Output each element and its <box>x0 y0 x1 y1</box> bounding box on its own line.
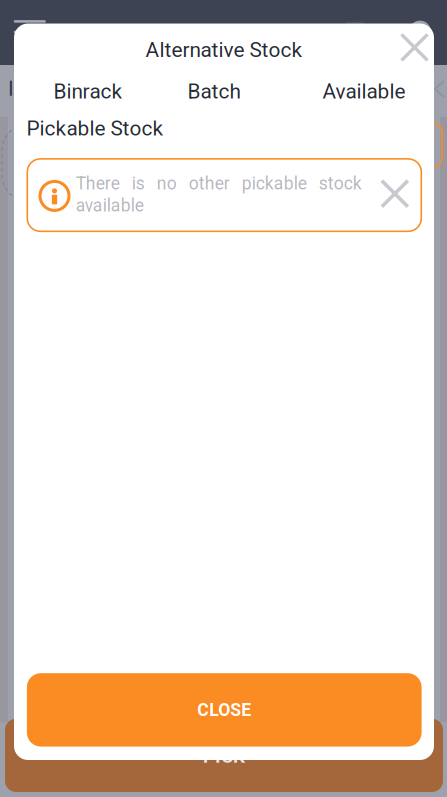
staticText: Available <box>322 79 405 104</box>
staticText: There is no other pickable stock availab… <box>76 173 362 216</box>
button[interactable]: Batch <box>139 74 289 108</box>
staticText: CLOSE <box>197 700 251 720</box>
button[interactable]: CLOSE <box>27 673 422 747</box>
button[interactable]: Close <box>392 25 436 69</box>
button[interactable]: Available <box>289 74 439 108</box>
staticText: Binrack <box>53 79 122 104</box>
staticText: PICK <box>203 745 245 767</box>
button[interactable]: Binrack <box>13 74 163 108</box>
staticText: Alternative Stock <box>145 38 302 62</box>
staticText: Batch <box>187 79 240 104</box>
button[interactable]: Dismiss message <box>376 175 414 213</box>
staticText: Pickable Stock <box>27 116 164 141</box>
staticText: I <box>8 76 14 101</box>
